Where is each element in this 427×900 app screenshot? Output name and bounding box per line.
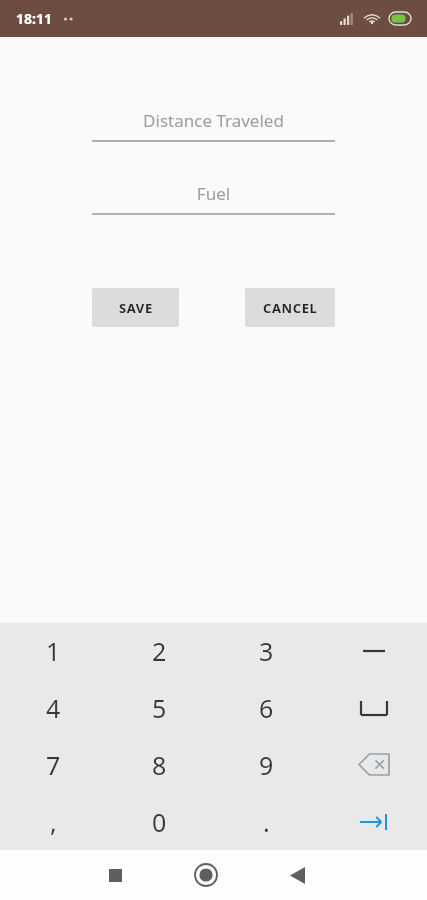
button[interactable]: 9	[213, 736, 320, 793]
staticText: 8	[152, 748, 167, 782]
staticText: 9	[259, 748, 274, 782]
staticText: .	[263, 805, 270, 839]
staticText: Fuel	[92, 182, 335, 205]
button[interactable]: 4	[0, 679, 106, 736]
button[interactable]: del	[320, 736, 427, 793]
button[interactable]: SAVE	[92, 288, 179, 327]
button[interactable]: minus	[320, 623, 427, 679]
staticText: 3	[259, 634, 274, 668]
staticText: Distance Traveled	[92, 109, 335, 132]
button[interactable]: 0	[106, 793, 213, 850]
button[interactable]: ,	[0, 793, 106, 850]
staticText: 5	[152, 691, 167, 725]
staticText: ,	[50, 805, 57, 839]
button[interactable]: .	[213, 793, 320, 850]
button[interactable]: 8	[106, 736, 213, 793]
button[interactable]: Recents	[91, 851, 139, 899]
button[interactable]: Back	[273, 851, 321, 899]
staticText: 6	[259, 691, 274, 725]
button[interactable]: 2	[106, 623, 213, 679]
button[interactable]: 7	[0, 736, 106, 793]
button[interactable]: Distance Traveled	[92, 109, 335, 142]
staticText: 0	[152, 805, 167, 839]
button[interactable]: space	[320, 679, 427, 736]
staticText: SAVE	[119, 299, 153, 317]
staticText: 7	[46, 748, 61, 782]
button[interactable]: Home	[182, 851, 230, 899]
staticText: 18:11	[16, 9, 52, 28]
staticText: 2	[152, 634, 167, 668]
staticText: CANCEL	[263, 299, 318, 317]
button[interactable]: 5	[106, 679, 213, 736]
staticText: 4	[46, 691, 61, 725]
button[interactable]: 3	[213, 623, 320, 679]
button[interactable]: tab	[320, 793, 427, 850]
button[interactable]: 1	[0, 623, 106, 679]
button[interactable]: 6	[213, 679, 320, 736]
staticText: 1	[46, 634, 61, 668]
button[interactable]: CANCEL	[245, 288, 335, 327]
button[interactable]: Fuel	[92, 182, 335, 215]
